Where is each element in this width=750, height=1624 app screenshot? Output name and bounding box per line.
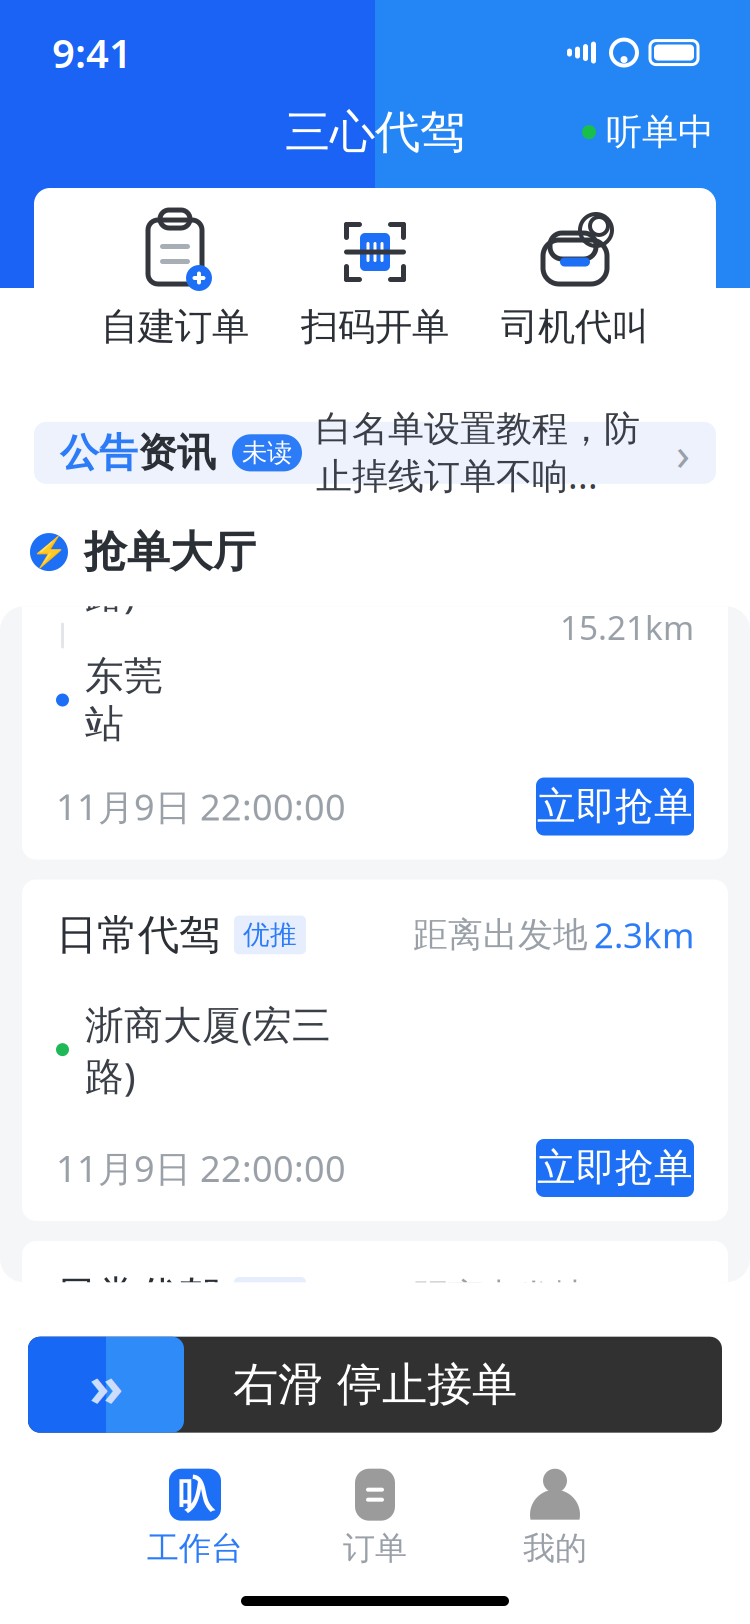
staticText: 立即抢单 — [537, 1506, 693, 1553]
staticText: 右滑 停止接单 — [233, 1357, 517, 1413]
button[interactable]: 日常代驾 — [22, 1241, 728, 1582]
button[interactable]: 司机代叫 — [475, 206, 675, 356]
button[interactable]: 公告 — [34, 422, 716, 484]
button[interactable]: 叺 — [105, 1463, 285, 1574]
button[interactable]: 扫码开单 — [275, 206, 475, 356]
button[interactable]: 订单 — [285, 1463, 465, 1574]
staticText: › — [676, 423, 690, 483]
staticText: 白名单设置教程，防止掉线订单不响... — [316, 407, 640, 499]
button[interactable]: 立即抢单 — [536, 1139, 694, 1197]
staticText: 抢单大厅 — [84, 526, 256, 578]
staticText: » — [89, 1347, 123, 1422]
staticText: 三心代驾 — [285, 104, 465, 160]
staticText: 立即抢单 — [537, 783, 693, 830]
staticText: 优推 — [243, 1280, 297, 1313]
staticText: 公告 — [60, 429, 138, 477]
button[interactable]: 立即抢单 — [536, 1500, 694, 1558]
staticText: 订单 — [343, 1529, 407, 1568]
staticText: 扫码开单 — [301, 304, 449, 350]
button[interactable]: 我的 — [465, 1463, 645, 1574]
staticText: 资讯 — [138, 429, 216, 477]
staticText: 日常代驾 — [56, 909, 220, 960]
staticText: 优推 — [243, 918, 297, 951]
staticText: 未读 — [242, 437, 292, 468]
staticText: 浙商大厦(宏三路) — [85, 421, 175, 618]
staticText: 听单中 — [606, 110, 714, 154]
button[interactable]: 日常代驾 — [22, 314, 728, 859]
button[interactable]: 立即抢单 — [536, 777, 694, 835]
staticText: 立即抢单 — [537, 1144, 693, 1192]
staticText: 15.21km — [560, 605, 694, 649]
staticText: 11月9日 22:00:00 — [56, 1505, 346, 1553]
staticText: 工作台 — [147, 1529, 243, 1568]
staticText: 9:41 — [52, 26, 132, 79]
staticText: ⚡ — [30, 535, 67, 569]
staticText: 浙商大厦(宏三路) — [85, 1360, 331, 1462]
staticText: 2.3km — [594, 912, 694, 958]
staticText: 叺 — [176, 1472, 213, 1518]
staticText: 11月9日 22:00:00 — [56, 783, 346, 830]
button[interactable]: 右滑 停止接单 — [28, 1337, 722, 1433]
button[interactable]: 听单中 — [576, 102, 720, 162]
staticText: 距离出发地 — [413, 914, 588, 956]
staticText: 自建订单 — [101, 304, 249, 350]
staticText: 距离出发地 — [413, 1275, 588, 1318]
staticText: 司机代叫 — [501, 304, 649, 350]
staticText: 东莞站 — [85, 652, 163, 747]
staticText: 11月9日 22:00:00 — [56, 1144, 346, 1192]
staticText: 我的 — [523, 1529, 587, 1568]
staticText: 日常代驾 — [56, 1271, 220, 1322]
staticText: 浙商大厦(宏三路) — [85, 998, 331, 1101]
button[interactable]: 日常代驾 — [22, 879, 728, 1221]
button[interactable]: 自建订单 — [75, 206, 275, 356]
